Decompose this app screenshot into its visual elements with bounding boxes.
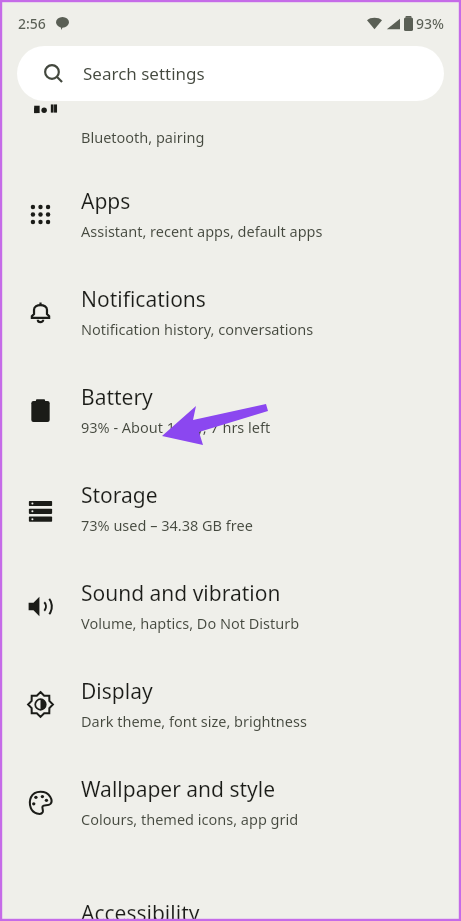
staticText: Notifications — [81, 285, 206, 314]
button[interactable]: Apps — [0, 165, 461, 263]
staticText: Display — [81, 677, 153, 706]
button[interactable]: Search settings — [17, 46, 444, 101]
staticText: Assistant, recent apps, default apps — [81, 221, 323, 241]
staticText: Volume, haptics, Do Not Disturb — [81, 613, 300, 633]
staticText: Notification history, conversations — [81, 319, 314, 339]
button[interactable]: Connected devices — [0, 109, 461, 165]
staticText: Accessibility — [81, 899, 200, 921]
staticText: 73% used – 34.38 GB free — [81, 515, 253, 535]
staticText: Dark theme, font size, brightness — [81, 711, 307, 731]
staticText: Search settings — [83, 62, 205, 85]
staticText: Apps — [81, 187, 131, 216]
staticText: Battery — [81, 383, 153, 412]
button[interactable]: Battery — [0, 361, 461, 459]
button[interactable]: Accessibility — [0, 851, 461, 911]
staticText: Colours, themed icons, app grid — [81, 809, 299, 829]
staticText: Bluetooth, pairing — [81, 127, 205, 147]
staticText: Wallpaper and style — [81, 775, 276, 804]
button[interactable]: Storage — [0, 459, 461, 557]
staticText: 2:56 — [18, 14, 46, 33]
button[interactable]: Sound and vibration — [0, 557, 461, 655]
staticText: 93% — [416, 14, 444, 33]
button[interactable]: Notifications — [0, 263, 461, 361]
button[interactable]: Display — [0, 655, 461, 753]
button[interactable]: Wallpaper and style — [0, 753, 461, 851]
staticText: Storage — [81, 481, 158, 510]
other: Connected devices — [31, 91, 63, 123]
staticText: Sound and vibration — [81, 579, 281, 608]
staticText: 93% - About 1 day, 7 hrs left — [81, 417, 271, 437]
